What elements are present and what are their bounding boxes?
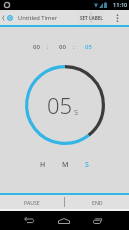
button[interactable]: H (32, 159, 54, 170)
staticText: Untitled Timer (18, 14, 58, 22)
button[interactable]: Home (48, 211, 80, 230)
button[interactable]: SET LABEL (78, 10, 105, 25)
staticText: : (47, 43, 49, 51)
button[interactable]: Recent apps (81, 211, 113, 230)
staticText: M (62, 160, 69, 170)
staticText: : (73, 43, 75, 51)
button[interactable]: M (54, 159, 76, 170)
staticText: 11:10 (113, 1, 128, 9)
button[interactable]: PAUSE (0, 195, 64, 209)
staticText: S (85, 160, 89, 170)
staticText: s (74, 105, 79, 117)
staticText: 00 (33, 43, 40, 51)
staticText: PAUSE (24, 199, 40, 206)
button[interactable]: Navigate up (0, 10, 18, 25)
staticText: 05 (47, 90, 73, 120)
staticText: 00 (59, 43, 66, 51)
button[interactable]: Back (13, 211, 45, 230)
button[interactable]: END (65, 195, 129, 209)
staticText: SET LABEL (80, 15, 103, 21)
staticText: 05 (85, 43, 92, 51)
button[interactable]: S (76, 159, 98, 170)
button[interactable]: More options (105, 10, 129, 25)
staticText: END (92, 199, 103, 206)
staticText: H (40, 160, 46, 170)
